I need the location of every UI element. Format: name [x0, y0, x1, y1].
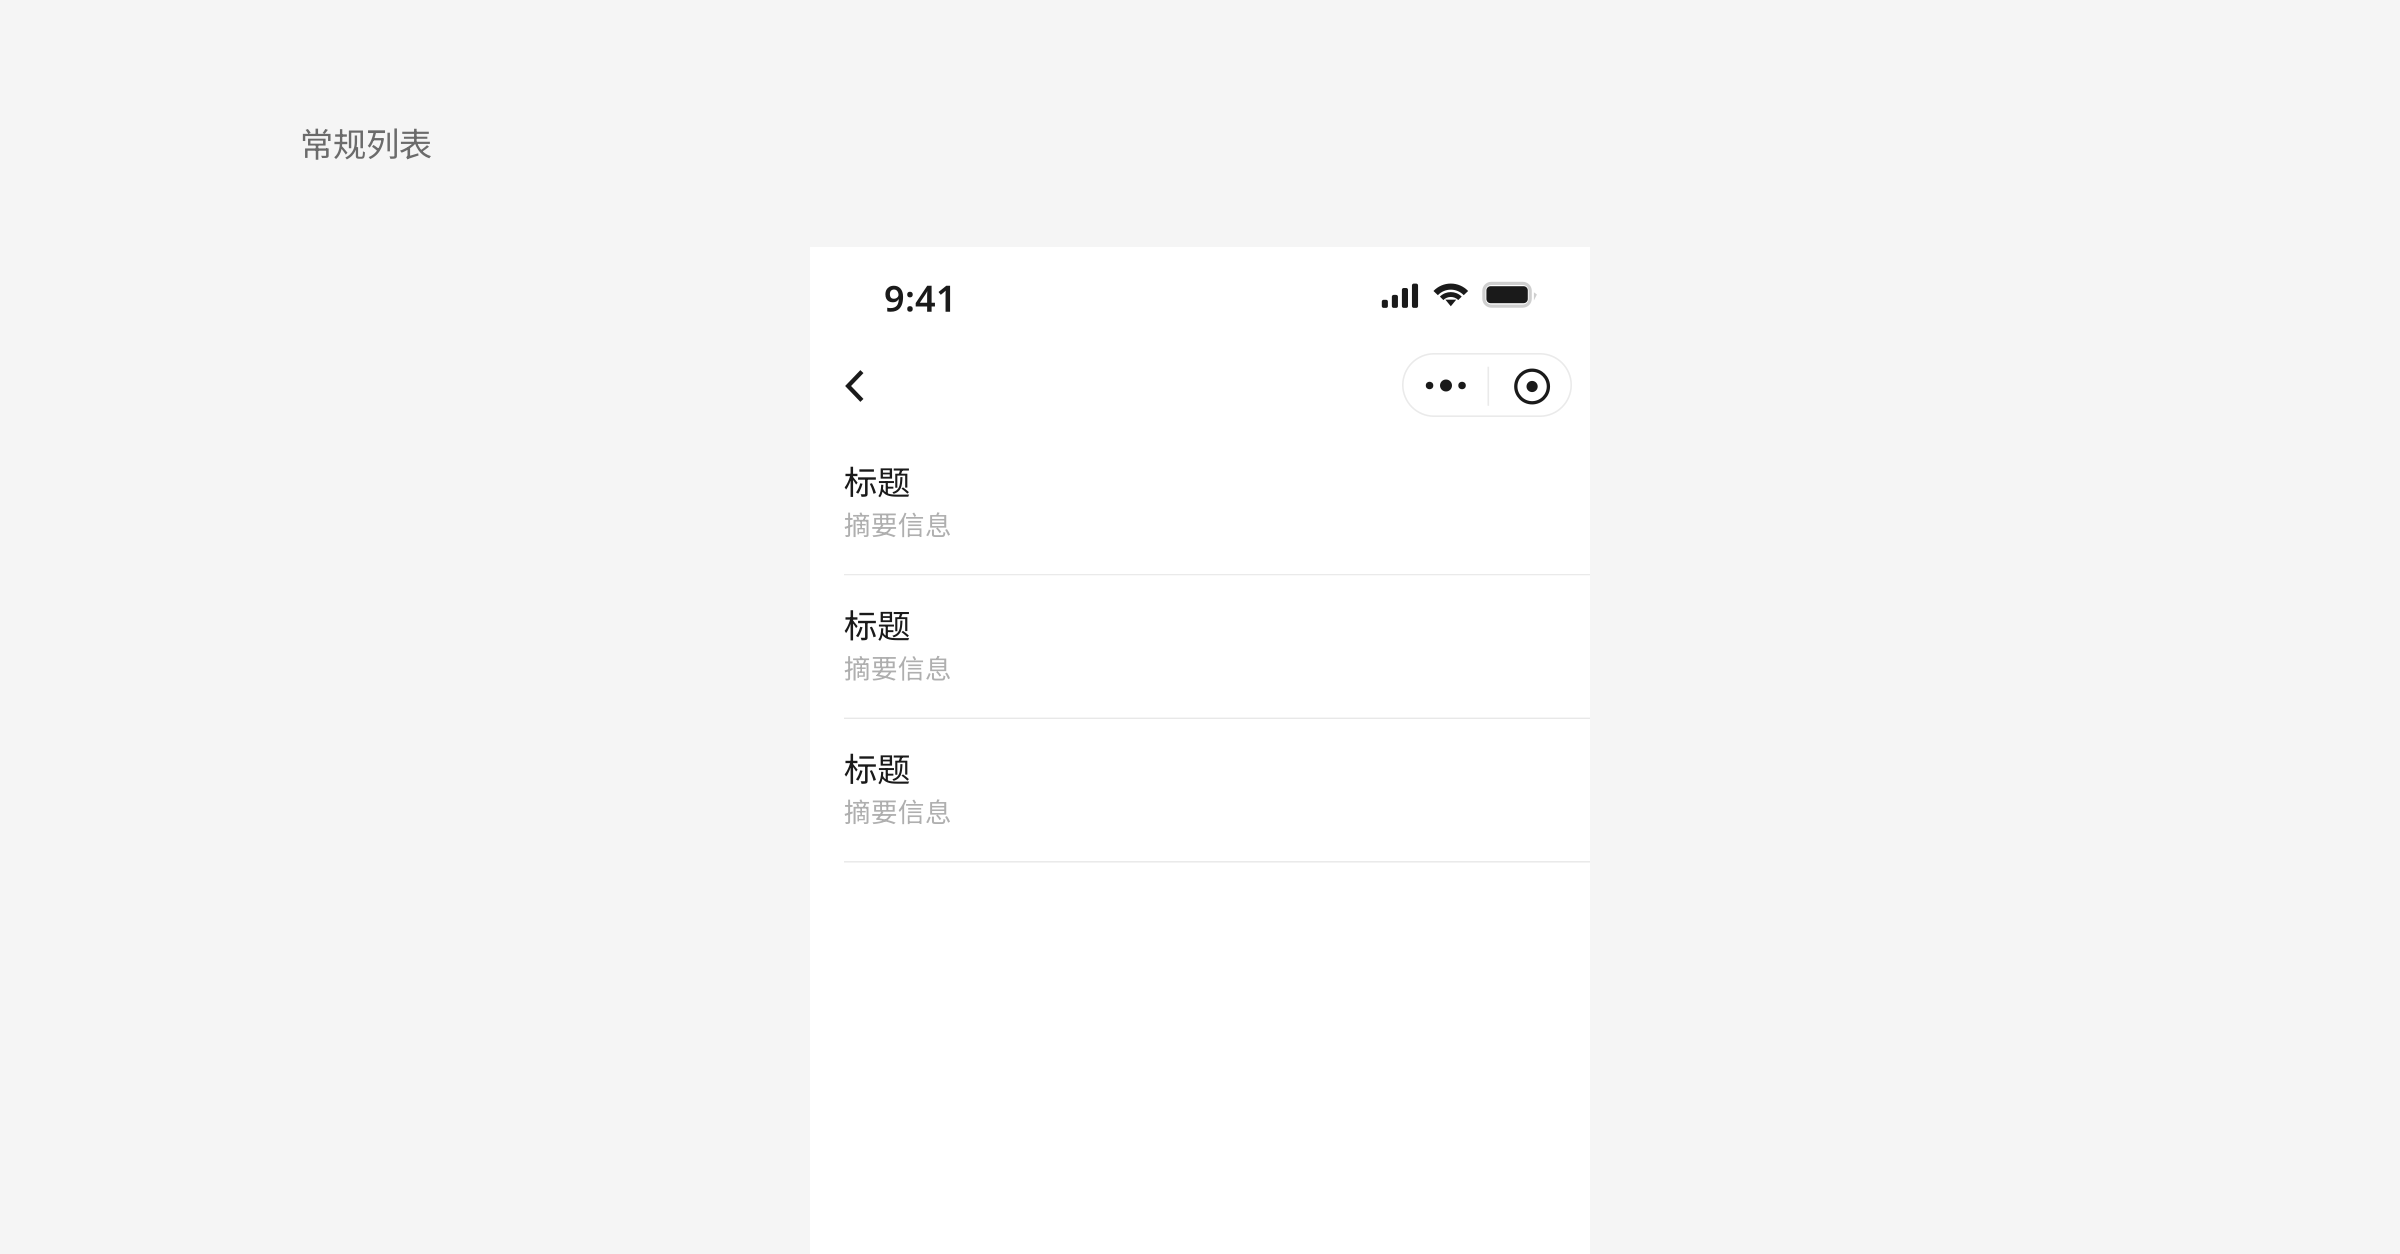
staticText: 标题 [844, 456, 910, 504]
staticText: 摘要信息 [844, 647, 952, 686]
button[interactable]: More options [1402, 353, 1488, 417]
button[interactable]: 标题 [810, 575, 1590, 719]
button[interactable]: 标题 [810, 432, 1590, 575]
staticText: 摘要信息 [844, 791, 952, 830]
button[interactable]: 标题 [810, 719, 1590, 862]
staticText: 标题 [844, 743, 910, 791]
staticText: 摘要信息 [844, 504, 952, 543]
staticText: 9:41 [884, 274, 957, 322]
button[interactable]: Back [818, 349, 892, 423]
staticText: 标题 [844, 599, 910, 648]
staticText: 常规列表 [300, 118, 432, 166]
button[interactable]: Close mini program [1402, 353, 1572, 417]
